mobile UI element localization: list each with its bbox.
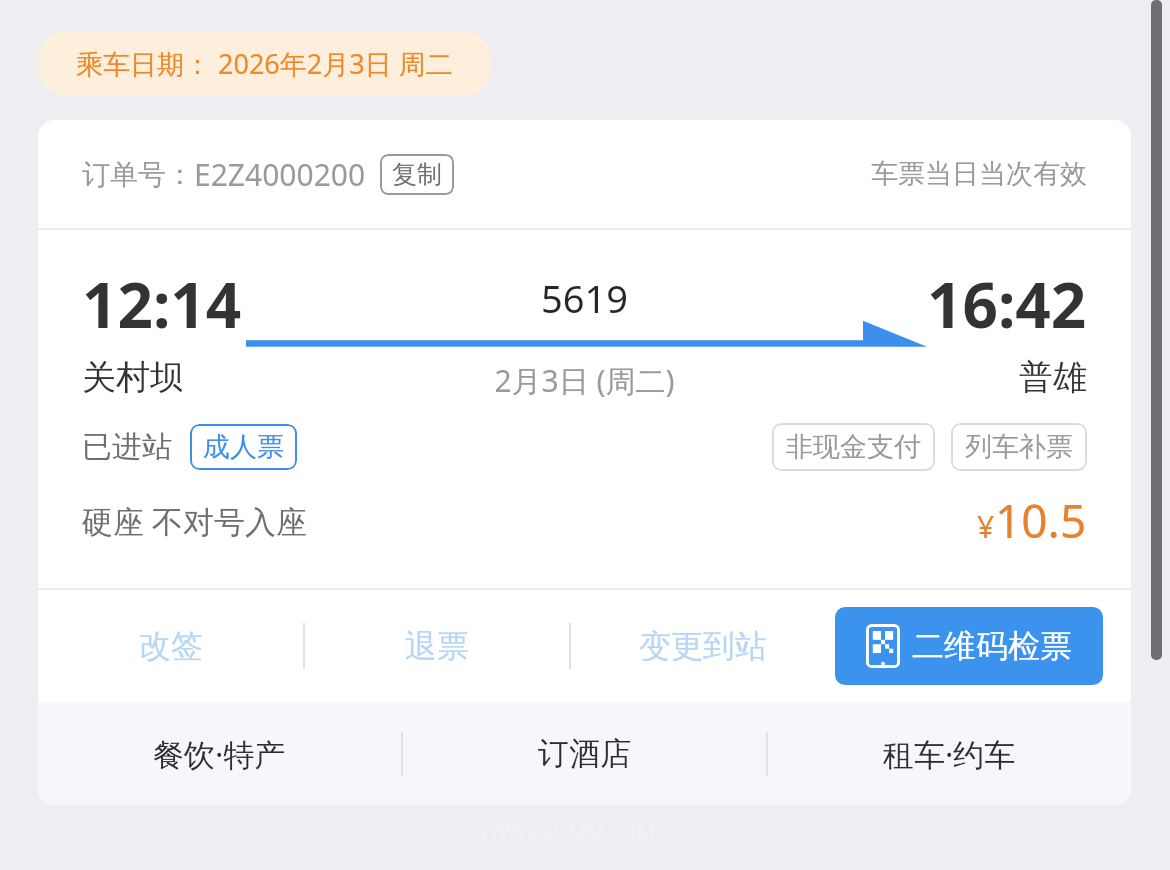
staticText: 关村坝 <box>82 356 184 399</box>
staticText: 改签 <box>139 626 203 666</box>
staticText: 变更到站 <box>639 626 767 666</box>
staticText: 二维码检票 <box>912 626 1072 666</box>
staticText: 订单号： <box>82 157 194 192</box>
staticText: 复制 <box>392 159 442 190</box>
staticText: 乘车日期： 2026年2月3日 周二 <box>76 45 453 82</box>
staticText: 列车补票 <box>965 430 1073 464</box>
staticText: E2Z4000200 <box>194 154 366 195</box>
staticText: 16:42 <box>927 262 1087 346</box>
staticText: 2月3日 (周二) <box>494 360 675 401</box>
button[interactable]: 餐饮·特产 <box>38 702 401 805</box>
staticText: 5619 <box>541 272 628 324</box>
button[interactable]: 变更到站 <box>571 590 835 702</box>
staticText: 退票 <box>405 626 469 666</box>
staticText: 硬座 不对号入座 <box>82 500 308 542</box>
staticText: 已进站 <box>82 428 172 466</box>
staticText: 租车·约车 <box>883 733 1016 775</box>
staticText: 订酒店 <box>538 734 631 773</box>
button[interactable]: 订酒店 <box>403 702 766 805</box>
staticText: 10.5 <box>995 489 1087 552</box>
staticText: 普雄 <box>1019 356 1087 399</box>
staticText: 车票当日当次有效 <box>871 157 1087 191</box>
staticText: 非现金支付 <box>786 430 921 464</box>
staticText: ¥ <box>977 506 995 547</box>
button[interactable]: 退票 <box>305 590 569 702</box>
button[interactable]: 改签 <box>38 590 303 702</box>
button[interactable]: 乘车日期： 2026年2月3日 周二 <box>38 31 491 96</box>
other: 二维码检票 <box>866 624 900 668</box>
staticText: 成人票 <box>203 430 284 464</box>
staticText: 餐饮·特产 <box>153 733 286 775</box>
button[interactable]: 二维码检票 <box>835 607 1103 685</box>
button[interactable]: 租车·约车 <box>768 702 1131 805</box>
button[interactable]: 复制 <box>380 154 454 195</box>
staticText: 12:14 <box>82 262 242 346</box>
button[interactable]: 成人票 <box>190 424 297 470</box>
